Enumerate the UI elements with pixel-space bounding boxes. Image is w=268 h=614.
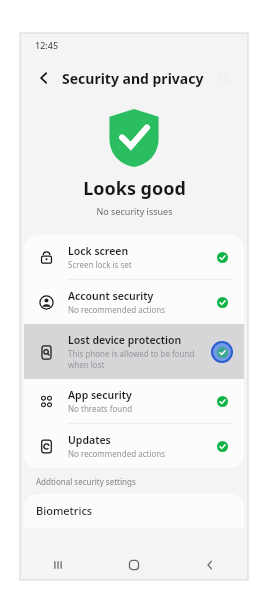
staticText: No security issues <box>96 205 173 217</box>
button[interactable]: Biometrics <box>24 494 244 528</box>
staticText: App security <box>68 388 132 402</box>
staticText: Looks good <box>83 176 186 201</box>
staticText: Updates <box>68 433 111 447</box>
staticText: Security and privacy <box>62 69 204 88</box>
staticText: Lock screen <box>68 244 129 258</box>
button[interactable]: Lost device protection <box>24 324 244 379</box>
button[interactable]: Account security <box>24 280 244 324</box>
staticText: Lost device protection <box>68 333 182 347</box>
staticText: Biometrics <box>36 503 93 518</box>
staticText: No threats found <box>68 403 133 414</box>
staticText: No recommended actions <box>68 448 166 459</box>
button[interactable]: Home <box>96 550 172 580</box>
staticText: No recommended actions <box>68 304 166 315</box>
button[interactable]: App security <box>24 379 244 424</box>
button[interactable]: Updates <box>24 424 244 468</box>
button[interactable]: Back <box>172 550 248 580</box>
staticText: Addtional security settings <box>36 476 136 487</box>
button[interactable]: Recents <box>20 550 96 580</box>
button[interactable]: Back <box>32 66 56 90</box>
staticText: 12:45 <box>35 39 59 51</box>
staticText: Account security <box>68 289 154 303</box>
staticText: Screen lock is set <box>68 259 132 270</box>
staticText: This phone is allowed to be found when l… <box>68 348 205 370</box>
button[interactable]: Lock screen <box>24 235 244 280</box>
